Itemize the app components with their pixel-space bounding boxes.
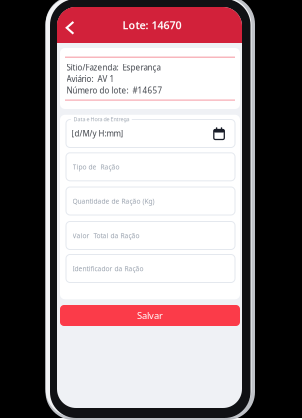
staticText: Lote: 14670 (122, 18, 181, 32)
staticText: Salvar (137, 309, 163, 322)
staticText: Quantidade de Ração (Kg) (72, 197, 154, 206)
staticText: Número do lote: #14657 (66, 85, 162, 96)
staticText: Sítio/Fazenda: Esperança (66, 62, 160, 73)
button[interactable]: Tipo de Ração (66, 153, 235, 181)
button[interactable]: Salvar (60, 305, 240, 326)
button[interactable]: Valor Total da Ração (66, 221, 235, 249)
button[interactable]: Quantidade de Ração (Kg) (66, 187, 235, 215)
staticText: Aviário: AV 1 (66, 74, 114, 84)
staticText: Identificador da Ração (72, 264, 143, 273)
staticText: Tipo de Ração (72, 163, 119, 171)
button[interactable]: Back (57, 7, 81, 43)
staticText: [d/M/y H:mm] (72, 128, 124, 139)
staticText: Data e Hora de Entrega (74, 116, 130, 123)
button[interactable]: Identificador da Ração (66, 254, 235, 282)
staticText: Valor Total da Ração (72, 231, 139, 240)
button[interactable]: Data e Hora de Entrega (66, 119, 235, 147)
